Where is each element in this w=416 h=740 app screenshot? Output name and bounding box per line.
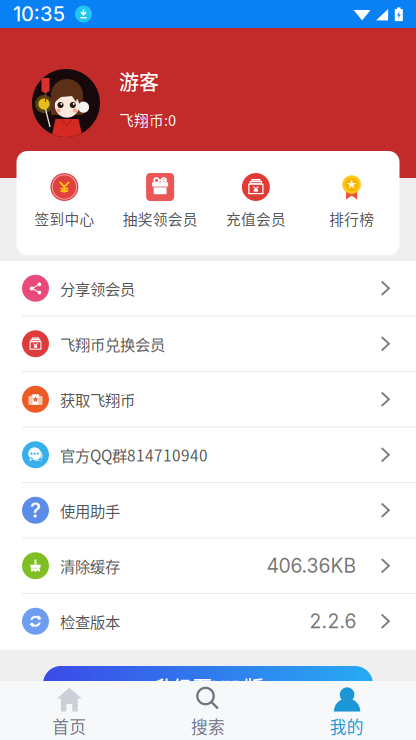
button[interactable]: 获取飞翔币 <box>0 372 416 427</box>
staticText: 首页 <box>52 714 86 738</box>
staticText: 406.36KB <box>267 554 357 577</box>
staticText: 搜索 <box>191 714 225 738</box>
button[interactable]: 排行榜 <box>304 173 400 229</box>
staticText: 分享领会员 <box>60 277 135 299</box>
staticText: 检查版本 <box>60 610 120 632</box>
staticText: 签到中心 <box>34 208 94 229</box>
button[interactable]: ? <box>0 483 416 538</box>
button[interactable]: 官方QQ群814710940 <box>0 427 416 483</box>
staticText: 排行榜 <box>329 208 374 229</box>
staticText: 飞翔币兑换会员 <box>60 333 165 355</box>
staticText: 10:35 <box>13 2 65 26</box>
button[interactable]: 首页 <box>0 687 139 738</box>
staticText: 清除缓存 <box>60 555 120 577</box>
staticText: 抽奖领会员 <box>123 208 198 229</box>
button[interactable]: 清除缓存 <box>0 538 416 594</box>
staticText: 官方QQ群814710940 <box>60 444 208 466</box>
button[interactable]: 签到中心 <box>16 173 112 229</box>
staticText: 2.2.6 <box>310 610 357 633</box>
button[interactable]: 飞翔币兑换会员 <box>0 316 416 372</box>
button[interactable]: 分享领会员 <box>0 261 416 316</box>
button[interactable]: 抽奖领会员 <box>112 173 208 229</box>
staticText: ? <box>30 498 41 522</box>
staticText: 使用助手 <box>60 499 120 521</box>
button[interactable]: 搜索 <box>139 687 277 738</box>
staticText: 升级至VIP版 <box>152 672 263 701</box>
staticText: 我的 <box>330 714 364 738</box>
staticText: 游客 <box>119 67 159 96</box>
button[interactable]: 充值会员 <box>208 173 304 229</box>
staticText: 充值会员 <box>226 208 286 229</box>
button[interactable]: 检查版本 <box>0 594 416 649</box>
staticText: 获取飞翔币 <box>60 388 135 410</box>
staticText: 飞翔币:0 <box>119 109 176 130</box>
button[interactable]: 我的 <box>277 687 416 738</box>
